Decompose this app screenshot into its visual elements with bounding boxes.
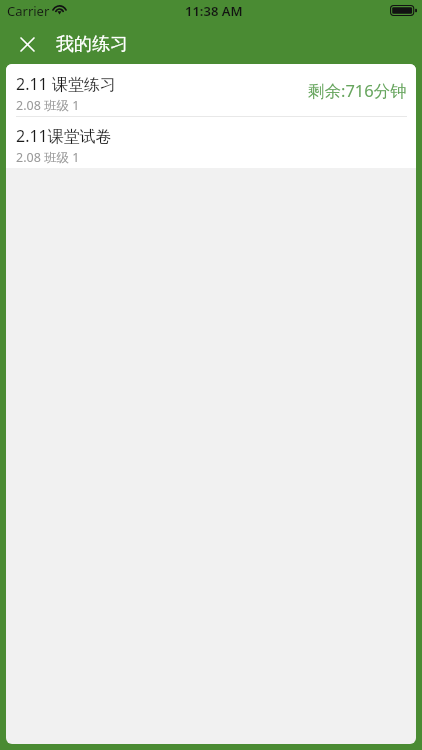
button[interactable]: Close <box>6 24 49 64</box>
button[interactable]: 2.11课堂试卷 <box>6 117 416 168</box>
staticText: 剩余:716分钟 <box>308 79 407 102</box>
staticText: 2.08 班级 1 <box>16 149 80 166</box>
staticText: 我的练习 <box>56 33 128 56</box>
staticText: 2.11课堂试卷 <box>16 125 112 147</box>
staticText: 2.08 班级 1 <box>16 97 80 114</box>
button[interactable]: 2.11 课堂练习 <box>6 64 416 116</box>
staticText: 2.11 课堂练习 <box>16 73 116 95</box>
staticText: Carrier <box>7 2 50 20</box>
staticText: 11:38 AM <box>185 2 243 20</box>
